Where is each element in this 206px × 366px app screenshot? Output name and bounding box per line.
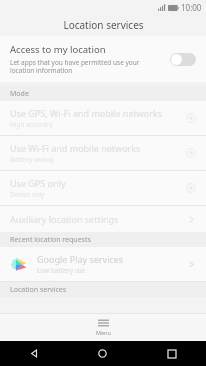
staticText: 10:00 [181, 2, 202, 13]
staticText: Menu [96, 329, 111, 336]
staticText: Access to my location [10, 43, 106, 56]
button[interactable]: Access to my location [0, 36, 206, 82]
staticText: Use Wi-Fi and mobile networks [10, 142, 141, 154]
staticText: Mode [10, 89, 29, 99]
button[interactable]: Home [68, 341, 137, 366]
button[interactable]: Menu [82, 316, 125, 339]
staticText: Use GPS, Wi-Fi and mobile networks [10, 107, 163, 119]
staticText: High accuracy [10, 120, 53, 129]
staticText: Low battery use [37, 266, 86, 275]
button[interactable]: Back [0, 341, 68, 366]
staticText: Google Play services [37, 253, 124, 265]
staticText: Battery saving [10, 155, 54, 164]
staticText: Recent location requests [10, 235, 91, 245]
button[interactable]: Use Wi-Fi and mobile networks [0, 136, 206, 170]
button[interactable]: Use GPS only [0, 171, 206, 205]
staticText: Auxiliary location settings [10, 213, 119, 225]
button[interactable]: Access to my location toggle [170, 53, 196, 66]
staticText: Location services [10, 285, 67, 295]
staticText: Location services [63, 18, 144, 32]
staticText: Use GPS only [10, 177, 66, 189]
staticText: Let apps that you have permitted use you… [10, 58, 162, 75]
button[interactable]: Use GPS, Wi-Fi and mobile networks [0, 101, 206, 135]
staticText: Device only [10, 190, 45, 199]
button[interactable]: Google Play services [0, 247, 206, 281]
button[interactable]: Recent apps [137, 341, 206, 366]
button[interactable]: Auxiliary location settings [0, 206, 206, 232]
